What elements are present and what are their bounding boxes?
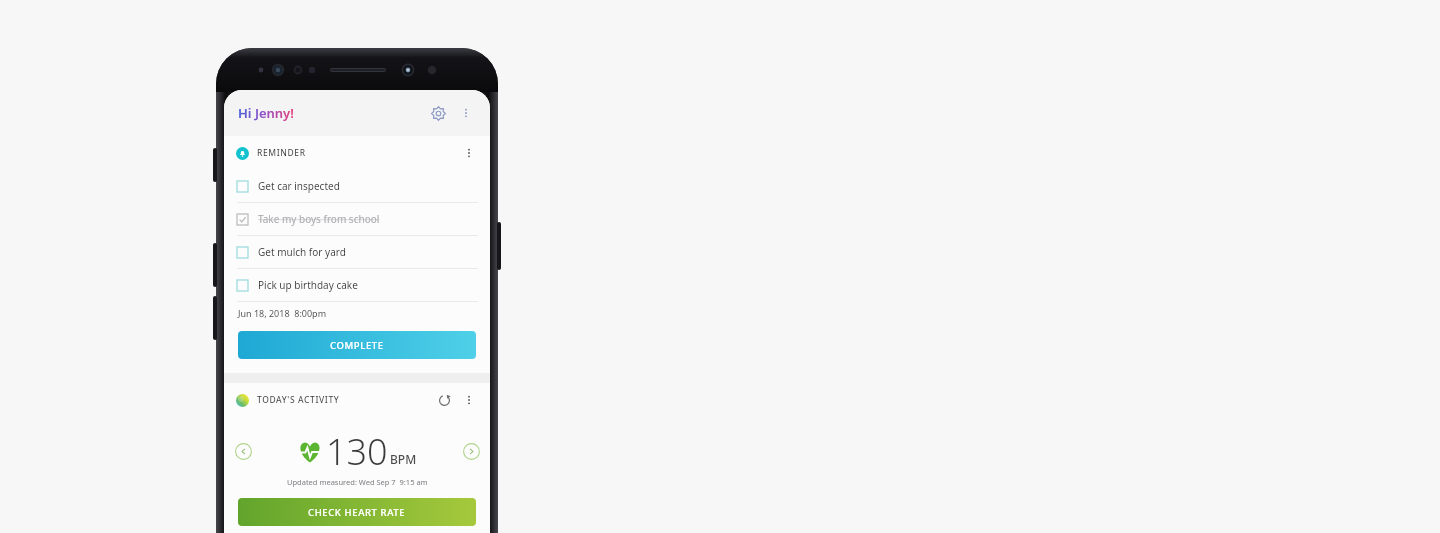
staticText: Updated measured: Wed Sep 7 9:15 am	[287, 477, 428, 487]
button[interactable]: Settings	[426, 101, 450, 125]
button[interactable]: Next	[460, 440, 482, 462]
button[interactable]: Take my boys from school	[224, 203, 490, 236]
button[interactable]: More options	[456, 103, 476, 123]
button[interactable]: CHECK HEART RATE	[238, 498, 476, 526]
staticText: Hi Jenny!	[238, 104, 294, 122]
staticText: Take my boys from school	[258, 212, 380, 226]
staticText: REMINDER	[257, 147, 306, 159]
button[interactable]: COMPLETE	[238, 331, 476, 359]
staticText: Get mulch for yard	[258, 245, 346, 259]
staticText: Jun 18, 2018 8:00pm	[238, 307, 327, 319]
button[interactable]: Get mulch for yard	[224, 236, 490, 269]
staticText: CHECK HEART RATE	[308, 506, 406, 519]
staticText: Pick up birthday cake	[258, 278, 358, 292]
button[interactable]: Card options	[460, 144, 478, 162]
staticText: Get car inspected	[258, 179, 340, 193]
button[interactable]: Pick up birthday cake	[224, 269, 490, 302]
staticText: BPM	[390, 451, 417, 467]
button[interactable]: Card options	[460, 391, 478, 409]
button[interactable]: Refresh	[434, 390, 454, 410]
button[interactable]: Get car inspected	[224, 170, 490, 203]
staticText: TODAY'S ACTIVITY	[257, 394, 340, 406]
staticText: COMPLETE	[330, 339, 384, 352]
button[interactable]: Previous	[232, 440, 254, 462]
staticText: 130	[326, 427, 388, 476]
